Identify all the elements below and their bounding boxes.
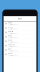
- staticText: Echo: [8, 39, 12, 41]
- button[interactable]: Echo: [4, 39, 36, 43]
- staticText: Subtitle line here: [8, 50, 18, 52]
- staticText: Subtitle line here: [8, 46, 18, 47]
- staticText: Inbox: [18, 18, 22, 20]
- staticText: Alpha: [8, 22, 12, 23]
- button[interactable]: Hotel: [4, 52, 36, 57]
- staticText: Bravo: [8, 26, 13, 28]
- staticText: Hotel: [8, 52, 12, 54]
- staticText: Subtitle line here: [8, 32, 18, 34]
- button[interactable]: Golf: [4, 48, 36, 52]
- button[interactable]: Charlie: [4, 30, 36, 35]
- button[interactable]: Bravo: [4, 26, 36, 30]
- staticText: Delta: [8, 35, 12, 37]
- staticText: Subtitle line here: [8, 41, 18, 43]
- staticText: Subtitle line here: [8, 37, 18, 39]
- staticText: Foxtrot: [8, 44, 15, 45]
- staticText: Charlie: [8, 30, 13, 32]
- staticText: Subtitle line here: [8, 28, 18, 30]
- button[interactable]: Delta: [4, 35, 36, 39]
- staticText: Subtitle line here: [8, 54, 18, 56]
- button[interactable]: Alpha: [4, 21, 36, 26]
- staticText: Subtitle line here: [8, 24, 18, 25]
- button[interactable]: Foxtrot: [4, 43, 36, 48]
